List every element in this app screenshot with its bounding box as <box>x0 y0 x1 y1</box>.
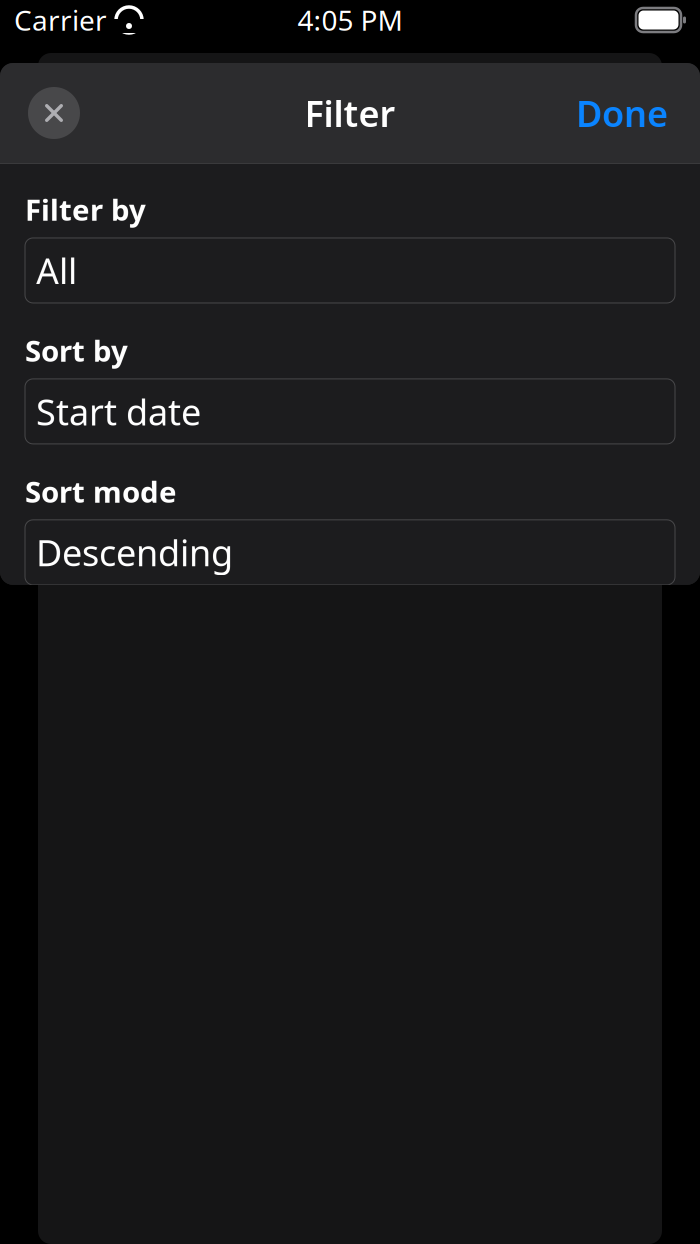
staticText: Filter <box>304 89 395 137</box>
staticText: All <box>36 247 77 294</box>
staticText: Descending <box>36 528 233 576</box>
staticText: Start date <box>36 387 201 435</box>
button[interactable]: Done <box>556 79 668 147</box>
staticText: Sort by <box>25 331 128 370</box>
staticText: Filter by <box>25 190 146 229</box>
staticText: 4:05 PM <box>297 1 402 39</box>
button[interactable]: Close <box>24 83 84 143</box>
staticText: Sort mode <box>25 472 177 511</box>
button[interactable]: Start date <box>25 379 675 444</box>
button[interactable]: All <box>25 238 675 303</box>
staticText: Done <box>576 89 668 137</box>
button[interactable]: Descending <box>25 520 675 585</box>
staticText: Carrier <box>14 1 107 39</box>
